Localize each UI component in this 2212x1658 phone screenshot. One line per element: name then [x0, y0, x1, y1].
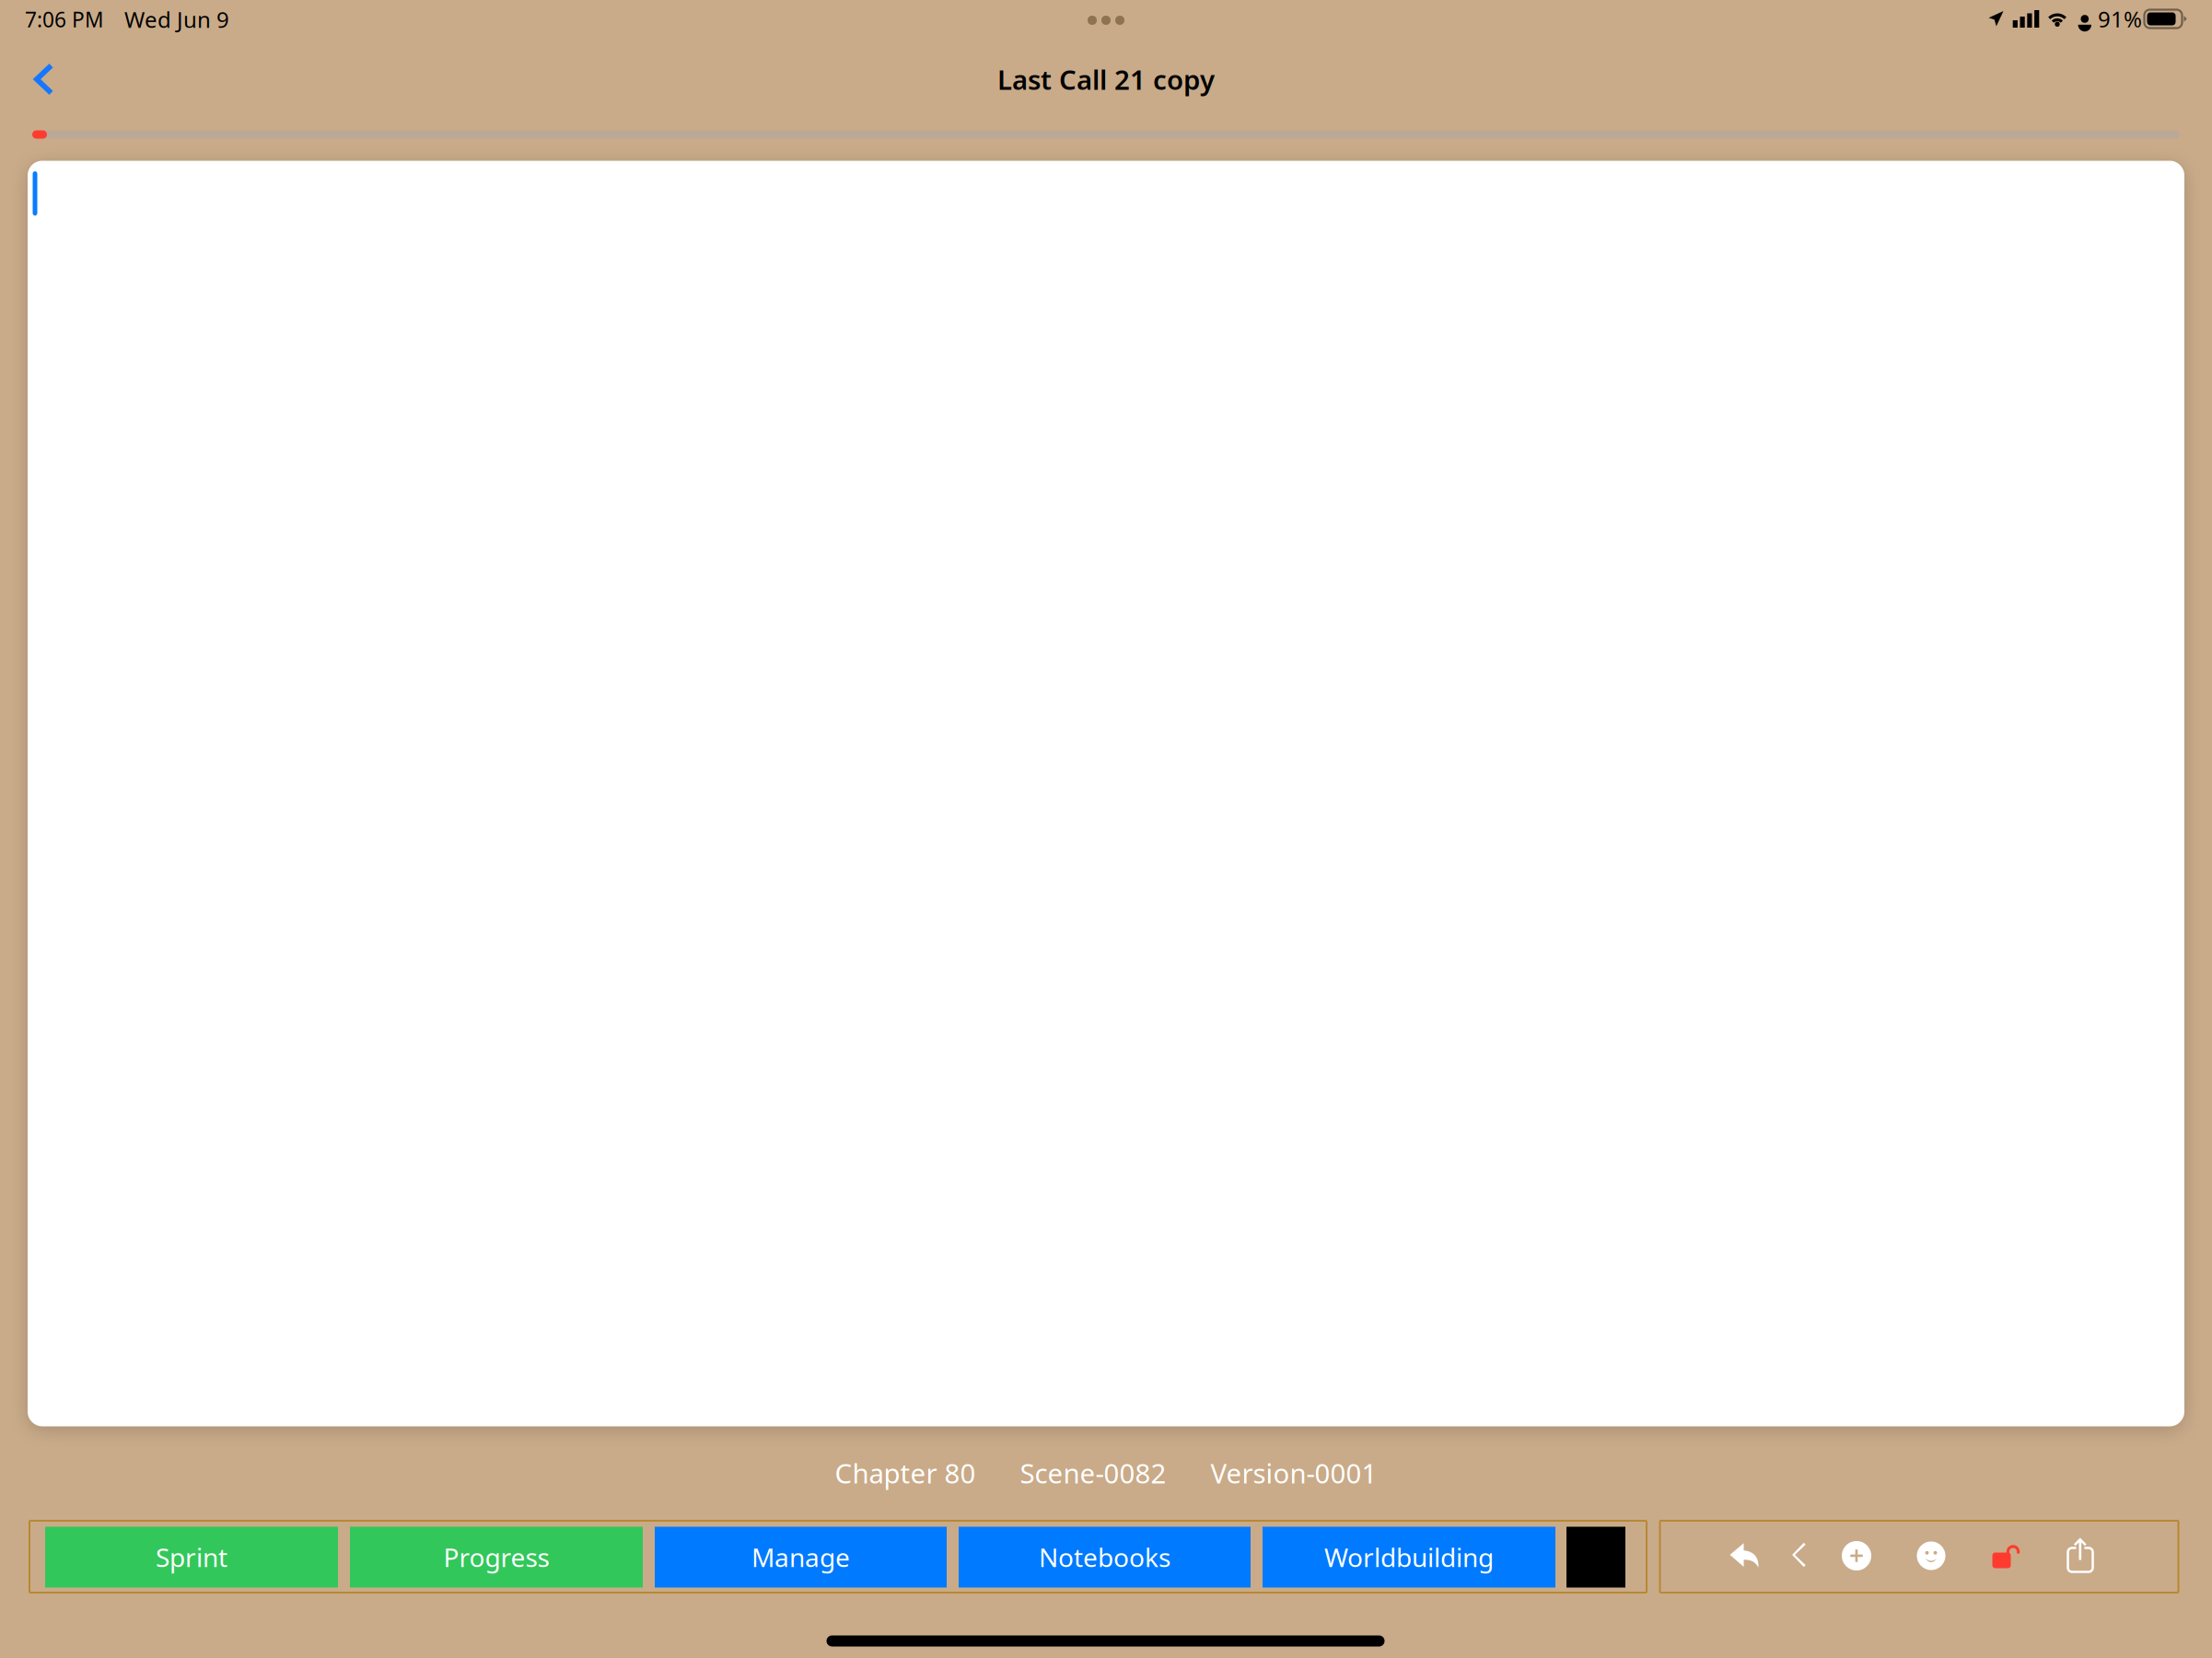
button[interactable]: Worldbuilding	[1263, 1527, 1555, 1588]
button[interactable]: Emoji	[1903, 1521, 1960, 1591]
staticText: 91%	[2098, 4, 2142, 34]
button[interactable]: Notebooks	[959, 1527, 1251, 1588]
staticText: 7:06 PM	[25, 5, 104, 33]
button[interactable]: Lock	[1978, 1520, 2035, 1590]
staticText: Version-0001	[1211, 1455, 1377, 1491]
button[interactable]: Back	[9, 46, 76, 112]
button[interactable]: Share	[2052, 1521, 2109, 1591]
button[interactable]: Undo	[1716, 1520, 1773, 1590]
button[interactable]: Sprint	[45, 1527, 338, 1588]
button[interactable]: Previous	[1770, 1520, 1828, 1590]
staticText: Notebooks	[1039, 1540, 1170, 1574]
staticText: Last Call 21 copy	[997, 61, 1215, 97]
button[interactable]: Progress	[350, 1527, 643, 1588]
staticText: Progress	[443, 1540, 549, 1574]
staticText: Manage	[751, 1540, 850, 1574]
button[interactable]: Text colour	[1566, 1527, 1625, 1588]
staticText: Sprint	[156, 1540, 227, 1574]
staticText: Scene-0082	[1020, 1455, 1166, 1491]
button[interactable]: Manage	[655, 1527, 947, 1588]
button[interactable]: Add	[1828, 1521, 1885, 1591]
staticText: Wed Jun 9	[124, 5, 229, 34]
staticText: Worldbuilding	[1324, 1540, 1494, 1574]
staticText: Chapter 80	[835, 1455, 976, 1491]
